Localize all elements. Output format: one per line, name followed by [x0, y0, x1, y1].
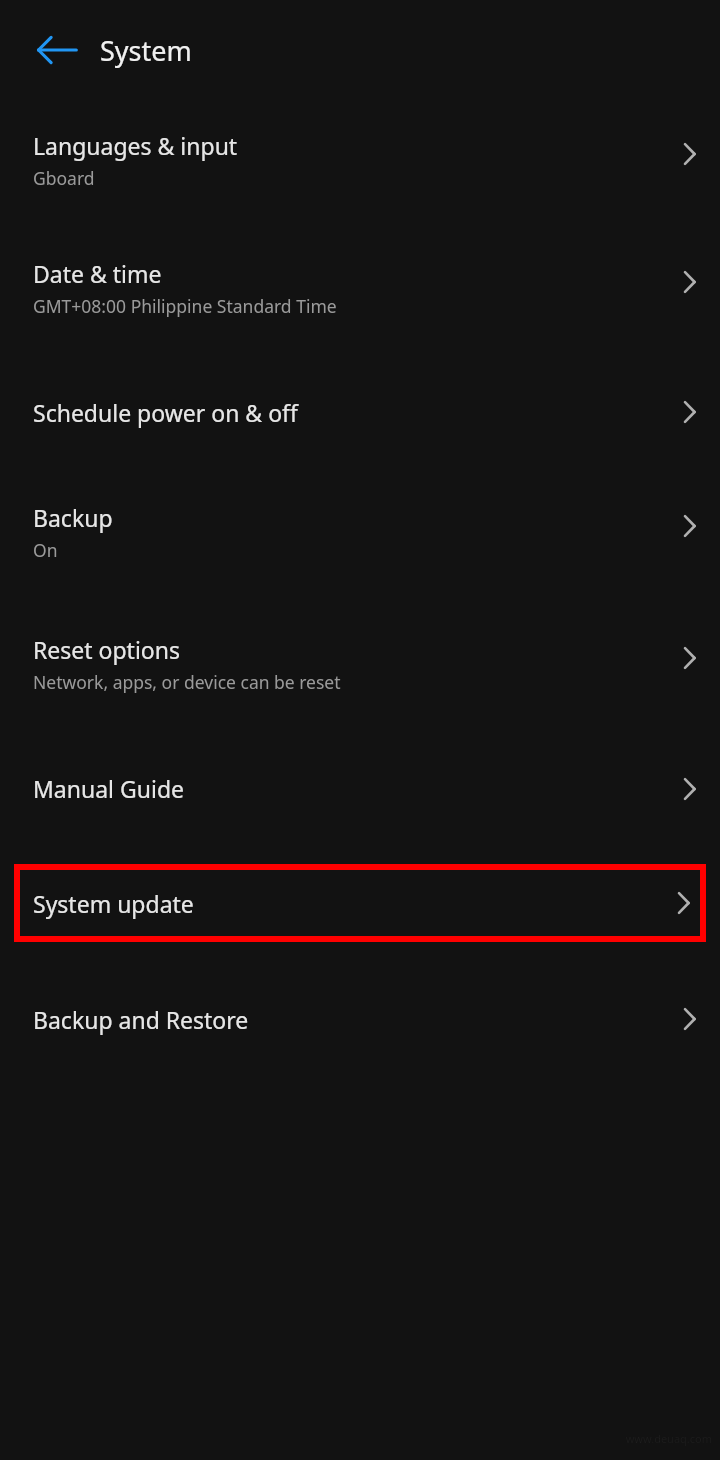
staticText: Manual Guide	[33, 773, 185, 804]
button[interactable]: Schedule power on & off	[0, 356, 720, 468]
button[interactable]: Languages & input	[0, 100, 720, 220]
staticText: Backup and Restore	[33, 1004, 249, 1035]
staticText: GMT+08:00 Philippine Standard Time	[33, 294, 337, 318]
staticText: Gboard	[33, 166, 95, 190]
staticText: System	[100, 32, 192, 69]
button[interactable]: System update	[14, 864, 706, 942]
staticText: System update	[33, 888, 194, 919]
button[interactable]: Backup	[0, 468, 720, 596]
button[interactable]: Reset options	[0, 596, 720, 732]
staticText: Schedule power on & off	[33, 397, 298, 428]
button[interactable]: Manual Guide	[0, 732, 720, 845]
staticText: Network, apps, or device can be reset	[33, 670, 341, 694]
button[interactable]: Backup and Restore	[0, 961, 720, 1077]
staticText: Backup	[33, 502, 113, 533]
button[interactable]: Back	[21, 14, 93, 86]
staticText: Languages & input	[33, 130, 238, 161]
staticText: On	[33, 538, 58, 562]
staticText: Date & time	[33, 258, 162, 289]
button[interactable]: Date & time	[0, 220, 720, 356]
staticText: Reset options	[33, 634, 180, 665]
